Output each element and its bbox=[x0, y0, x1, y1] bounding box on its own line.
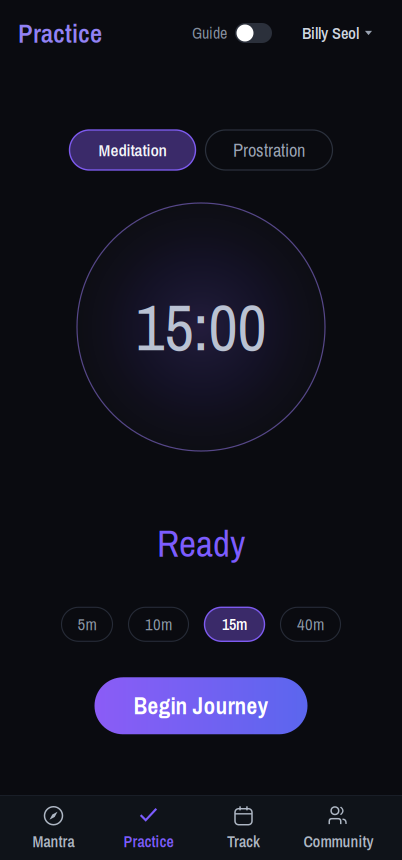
staticText: Community bbox=[303, 831, 373, 852]
staticText: Ready bbox=[157, 518, 245, 568]
staticText: 40m bbox=[297, 613, 324, 636]
button[interactable]: Billy Seol bbox=[302, 22, 372, 44]
staticText: Track bbox=[227, 831, 260, 852]
staticText: Guide bbox=[192, 22, 227, 44]
button[interactable]: Begin Journey bbox=[94, 677, 307, 734]
button[interactable]: Community bbox=[291, 796, 386, 860]
button[interactable]: 5m bbox=[61, 607, 112, 641]
button[interactable]: Meditation bbox=[69, 130, 195, 170]
staticText: 15m bbox=[222, 613, 247, 635]
staticText: Practice bbox=[123, 831, 173, 852]
button[interactable]: Track bbox=[196, 796, 291, 860]
button[interactable]: Practice bbox=[101, 796, 196, 860]
button[interactable]: 15m bbox=[204, 607, 264, 641]
staticText: Billy Seol bbox=[302, 22, 359, 44]
staticText: Begin Journey bbox=[133, 690, 268, 721]
button[interactable]: Guide bbox=[192, 22, 272, 44]
staticText: 5m bbox=[77, 613, 96, 636]
staticText: Meditation bbox=[98, 138, 166, 162]
staticText: Mantra bbox=[32, 831, 74, 852]
staticText: Prostration bbox=[233, 138, 305, 162]
staticText: Practice bbox=[18, 15, 102, 51]
staticText: 15:00 bbox=[135, 284, 266, 370]
staticText: 10m bbox=[145, 613, 172, 636]
button[interactable]: Mantra bbox=[6, 796, 101, 860]
button[interactable]: 10m bbox=[128, 607, 188, 641]
button[interactable]: 40m bbox=[280, 607, 340, 641]
button[interactable]: Prostration bbox=[205, 130, 332, 170]
